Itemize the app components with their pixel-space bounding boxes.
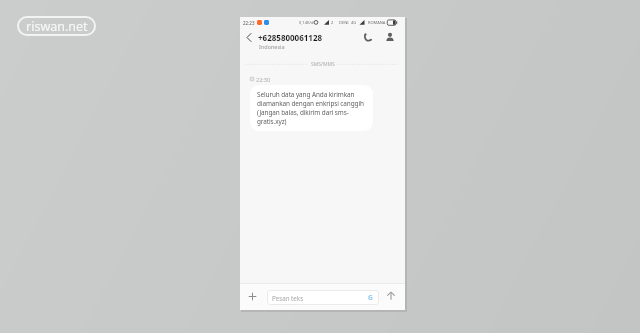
- staticText: DENI: [339, 20, 349, 25]
- staticText: 22:23: [243, 20, 255, 26]
- staticText: 4G: [351, 20, 357, 25]
- button[interactable]: [363, 33, 372, 42]
- button[interactable]: Seluruh data yang Anda kirimkan diamanka…: [250, 85, 373, 131]
- button[interactable]: [245, 32, 253, 43]
- staticText: Seluruh data yang Anda kirimkan diamanka…: [257, 90, 364, 126]
- button[interactable]: [386, 291, 396, 301]
- button[interactable]: [385, 32, 395, 42]
- staticText: riswan.net: [26, 18, 88, 35]
- staticText: 2: [331, 20, 334, 25]
- staticText: Pesan teks: [272, 294, 304, 302]
- staticText: +6285800061128: [258, 32, 323, 43]
- staticText: SMS/MMS: [311, 61, 335, 68]
- staticText: 0,14K/d: [299, 20, 314, 25]
- button[interactable]: [248, 292, 257, 301]
- button[interactable]: riswan.net: [17, 16, 96, 36]
- staticText: Indonesia: [259, 43, 285, 50]
- staticText: ROMANA: [368, 20, 386, 25]
- staticText: G: [368, 293, 373, 302]
- staticText: 22:30: [256, 76, 271, 83]
- button[interactable]: Pesan teks: [267, 290, 379, 305]
